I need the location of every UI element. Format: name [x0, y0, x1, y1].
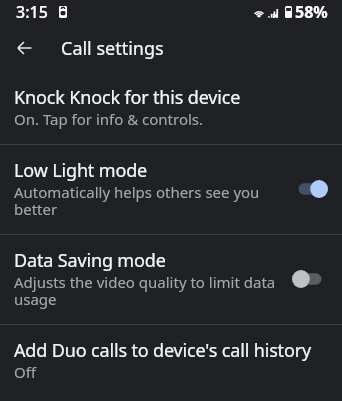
- button[interactable]: Knock Knock for this device: [0, 72, 342, 144]
- staticText: Low Light mode: [14, 158, 148, 183]
- button[interactable]: Low Light mode: [0, 145, 342, 234]
- button[interactable]: Navigate up: [0, 24, 48, 72]
- staticText: Knock Knock for this device: [14, 85, 241, 110]
- button[interactable]: Turn off Low Light mode: [292, 179, 328, 199]
- button[interactable]: Add Duo calls to device's call history: [0, 325, 342, 397]
- staticText: On. Tap for info & controls.: [14, 109, 204, 129]
- staticText: Automatically helps others see you bette…: [14, 182, 278, 219]
- staticText: 3:15: [16, 1, 48, 23]
- staticText: 58%: [295, 1, 328, 23]
- staticText: Add Duo calls to device's call history: [14, 338, 312, 363]
- staticText: Data Saving mode: [14, 248, 166, 273]
- staticText: Call settings: [61, 36, 164, 61]
- staticText: Off: [14, 362, 37, 382]
- button[interactable]: Data Saving mode: [0, 235, 342, 324]
- button[interactable]: Turn on Data Saving mode: [292, 269, 328, 289]
- staticText: Adjusts the video quality to limit data …: [14, 272, 278, 309]
